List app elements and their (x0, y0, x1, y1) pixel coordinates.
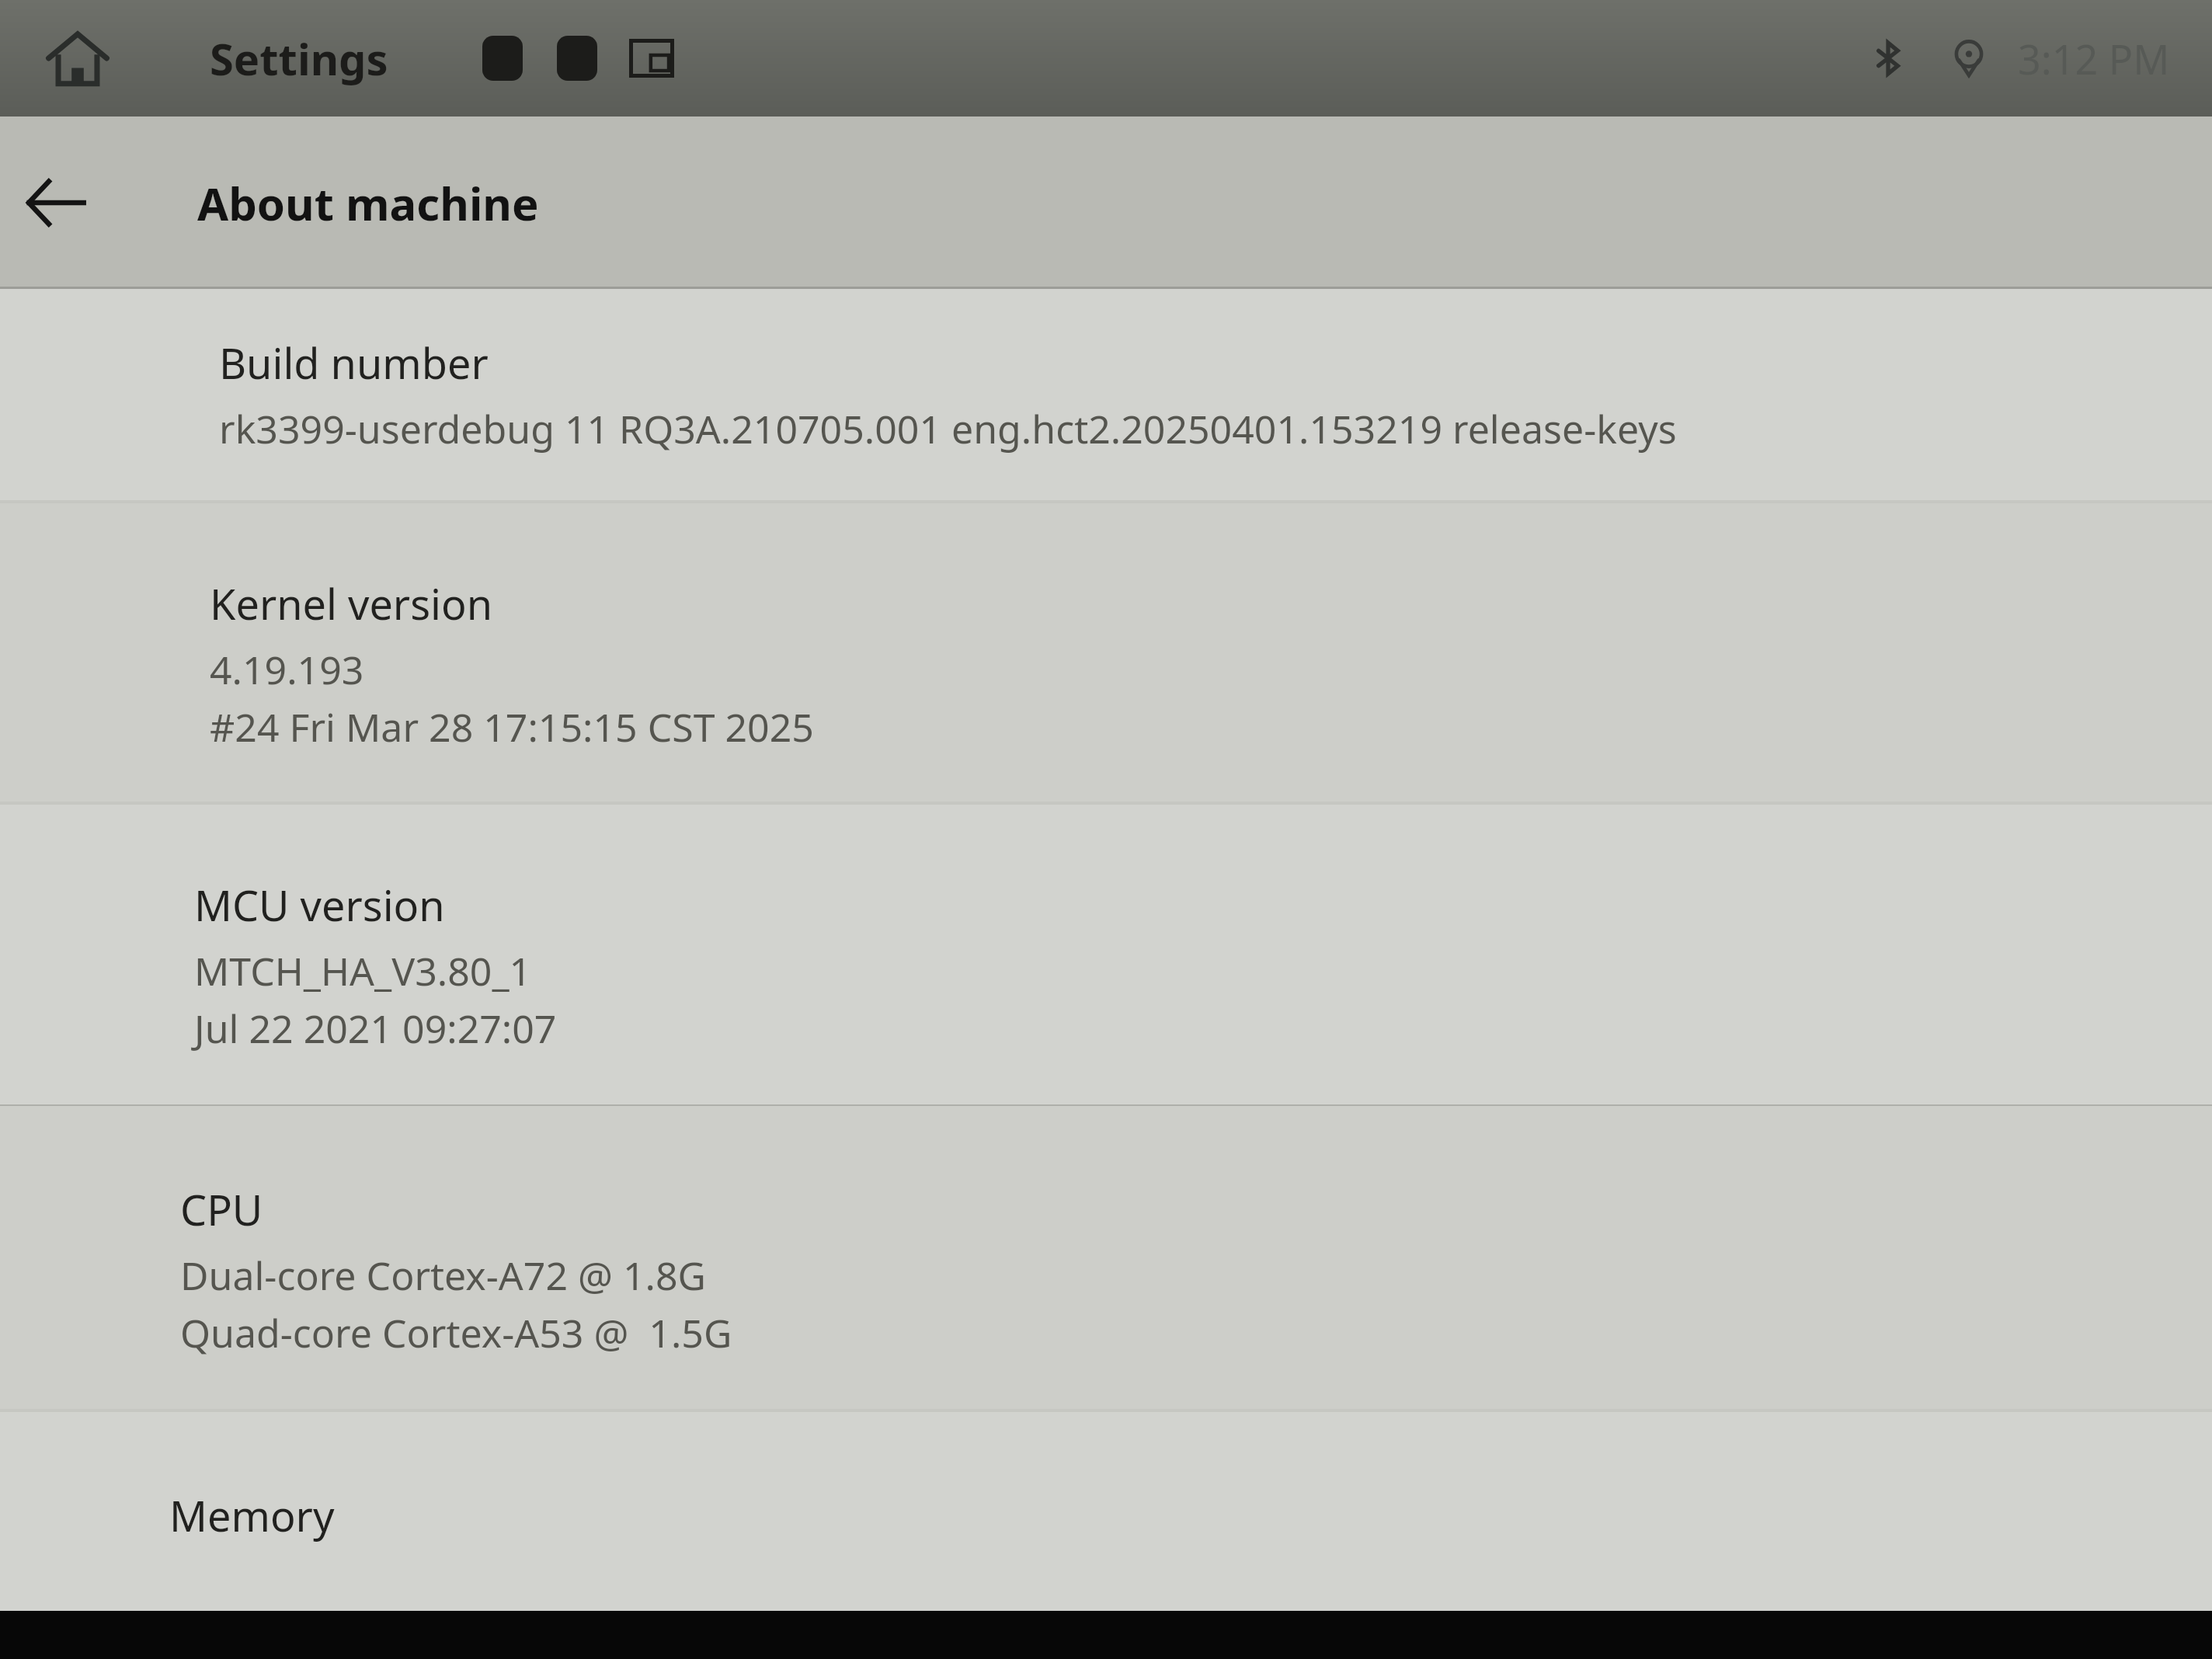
button[interactable]: Back (8, 155, 104, 251)
staticText: Build number (219, 334, 489, 391)
button[interactable]: Build number (0, 289, 2212, 500)
staticText: Dual-core Cortex-A72 @ 1.8G (180, 1249, 706, 1302)
staticText: About machine (197, 172, 539, 234)
button[interactable]: Home (37, 18, 118, 99)
button[interactable]: App icon one (474, 30, 531, 87)
button[interactable]: MCU version (0, 805, 2212, 1104)
button[interactable]: Settings (210, 29, 388, 88)
staticText: 4.19.193 (210, 643, 364, 696)
staticText: #24 Fri Mar 28 17:15:15 CST 2025 (210, 701, 814, 753)
other: Location (1942, 31, 1996, 85)
button[interactable]: Picture in picture (623, 30, 680, 87)
button[interactable]: Memory (0, 1412, 2212, 1611)
staticText: Jul 22 2021 09:27:07 (194, 1002, 557, 1055)
button[interactable]: Kernel version (0, 503, 2212, 802)
staticText: Quad-core Cortex-A53 @ 1.5G (180, 1306, 732, 1359)
staticText: CPU (180, 1181, 263, 1238)
staticText: Memory (169, 1487, 335, 1544)
staticText: rk3399-userdebug 11 RQ3A.210705.001 eng.… (219, 402, 1677, 455)
button[interactable]: CPU (0, 1106, 2212, 1409)
staticText: MTCH_HA_V3.80_1 (194, 944, 532, 997)
other: Bluetooth (1861, 31, 1915, 85)
staticText: Kernel version (210, 575, 493, 632)
staticText: MCU version (194, 876, 445, 934)
button[interactable]: App icon two (548, 30, 606, 87)
staticText: 3:12 PM (2018, 31, 2170, 86)
